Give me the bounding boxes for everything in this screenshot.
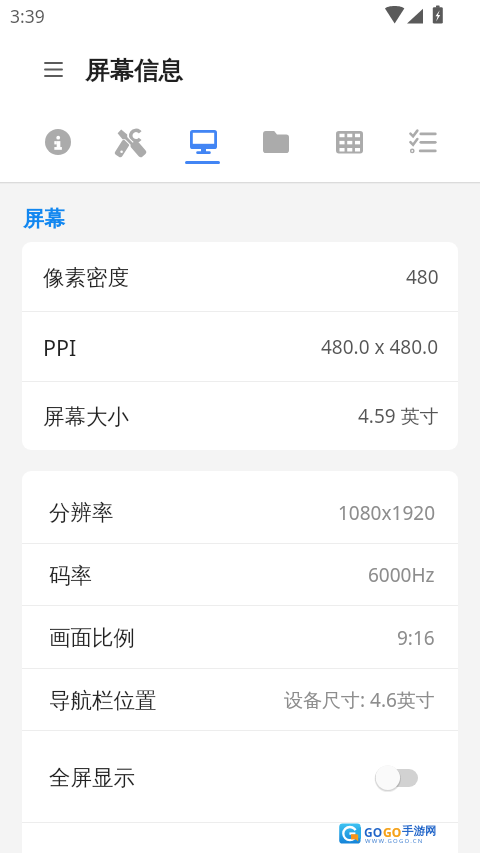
button[interactable]	[22, 823, 458, 853]
staticText: 480	[406, 264, 439, 290]
button[interactable]: 导航栏位置	[22, 669, 458, 731]
button[interactable]: Menu	[31, 47, 76, 91]
button[interactable]: Grid	[312, 104, 385, 182]
staticText: 1080x1920	[338, 500, 435, 526]
staticText: 全屏显示	[49, 764, 135, 791]
staticText: 手游网	[402, 824, 437, 838]
staticText: 导航栏位置	[49, 687, 157, 714]
staticText: 画面比例	[49, 624, 135, 651]
staticText: 屏幕大小	[43, 403, 129, 430]
button[interactable]: Files	[239, 104, 312, 182]
button[interactable]: Tools	[94, 104, 166, 182]
staticText: 像素密度	[43, 264, 129, 291]
staticText: GO	[383, 824, 402, 840]
staticText: 码率	[49, 562, 92, 589]
staticText: GO	[364, 824, 383, 840]
button[interactable]: 全屏显示	[22, 731, 458, 823]
button[interactable]: 像素密度	[22, 242, 458, 312]
staticText: 分辨率	[49, 499, 114, 526]
button[interactable]: Display	[166, 104, 239, 182]
button[interactable]: 屏幕大小	[22, 382, 458, 450]
button[interactable]: PPI	[22, 312, 458, 382]
staticText: 9:16	[397, 625, 435, 651]
staticText: 屏幕	[23, 206, 65, 232]
button[interactable]: Info	[22, 104, 94, 182]
staticText: 屏幕信息	[85, 55, 183, 86]
staticText: 4.59 英寸	[358, 403, 439, 429]
button[interactable]: 分辨率	[22, 481, 458, 544]
staticText: WWW.GOGO.CN	[365, 837, 424, 845]
button[interactable]: 画面比例	[22, 606, 458, 669]
staticText: 3:39	[10, 4, 45, 28]
staticText: PPI	[43, 333, 77, 362]
staticText: 6000Hz	[368, 562, 435, 588]
button[interactable]: Checklist	[385, 104, 458, 182]
staticText: 480.0 x 480.0	[321, 334, 439, 360]
staticText: 设备尺寸: 4.6英寸	[284, 687, 435, 713]
button[interactable]: 码率	[22, 544, 458, 606]
